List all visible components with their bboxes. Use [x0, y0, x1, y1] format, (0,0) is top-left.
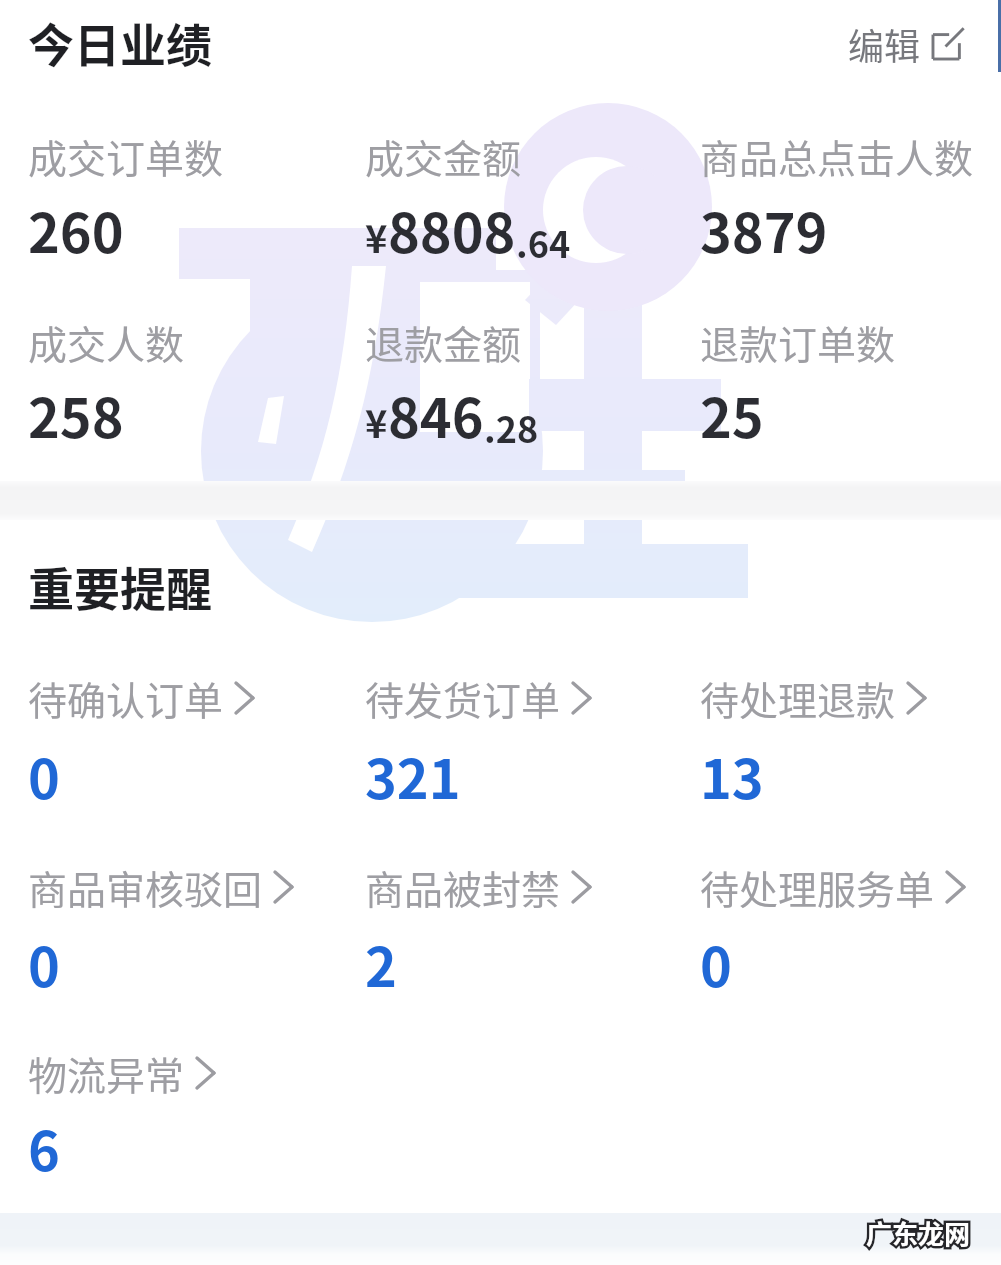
staticText: 成交订单数 — [28, 128, 224, 184]
staticText: 3879 — [700, 190, 828, 268]
staticText: ¥ — [365, 394, 388, 449]
staticText: 待处理服务单 — [700, 859, 935, 915]
staticText: 待确认订单 — [28, 670, 224, 726]
button[interactable]: 商品被封禁 — [365, 859, 591, 915]
staticText: 2 — [365, 924, 397, 1002]
staticText: 成交人数 — [28, 314, 185, 370]
staticText: 商品总点击人数 — [700, 128, 974, 184]
staticText: 今日业绩 — [28, 9, 212, 76]
staticText: 846 — [388, 375, 484, 453]
button[interactable]: 待确认订单 — [28, 670, 254, 726]
staticText: 广东龙网 — [866, 1214, 971, 1252]
staticText: .64 — [516, 216, 571, 268]
staticText: 0 — [28, 736, 60, 814]
staticText: 退款金额 — [365, 314, 522, 370]
staticText: 258 — [28, 375, 124, 453]
staticText: 13 — [700, 736, 764, 814]
staticText: 25 — [700, 375, 764, 453]
staticText: 8808 — [388, 190, 516, 268]
staticText: 物流异常 — [28, 1045, 185, 1101]
button[interactable]: 物流异常 — [28, 1045, 215, 1101]
staticText: 6 — [28, 1108, 60, 1186]
staticText: 0 — [700, 924, 732, 1002]
button[interactable]: 商品审核驳回 — [28, 859, 293, 915]
staticText: 0 — [28, 924, 60, 1002]
staticText: 成交金额 — [365, 128, 522, 184]
button[interactable]: 待发货订单 — [365, 670, 591, 726]
staticText: 商品审核驳回 — [28, 859, 263, 915]
staticText: .28 — [484, 401, 539, 453]
button[interactable]: 编辑 — [848, 18, 964, 70]
staticText: 广东龙网 — [866, 1214, 971, 1252]
staticText: 待处理退款 — [700, 670, 896, 726]
staticText: 260 — [28, 190, 124, 268]
staticText: 编辑 — [848, 18, 921, 70]
staticText: 待发货订单 — [365, 670, 561, 726]
staticText: 商品被封禁 — [365, 859, 561, 915]
staticText: 退款订单数 — [700, 314, 896, 370]
staticText: ¥ — [365, 209, 388, 264]
button[interactable]: 待处理退款 — [700, 670, 926, 726]
button[interactable]: 待处理服务单 — [700, 859, 965, 915]
staticText: 321 — [365, 736, 461, 814]
staticText: 重要提醒 — [28, 553, 212, 620]
